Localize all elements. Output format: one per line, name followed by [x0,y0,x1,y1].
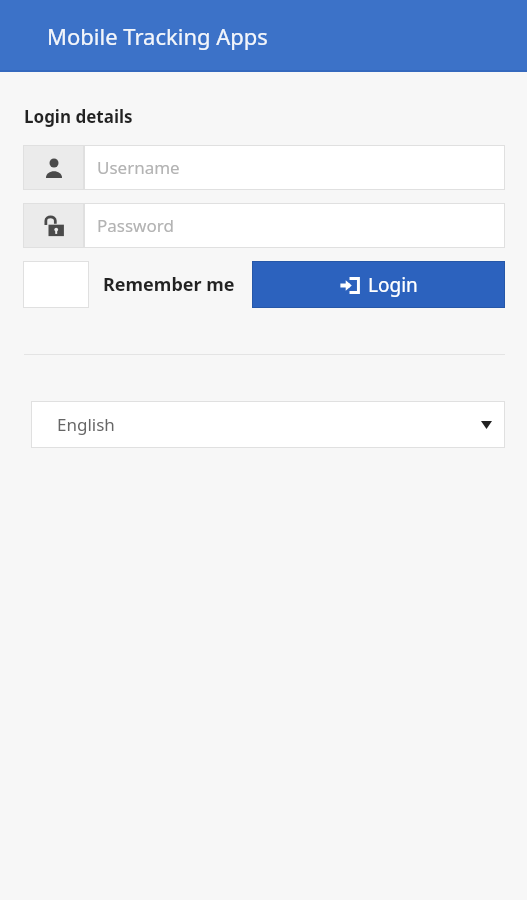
staticText: Password [97,214,174,237]
button[interactable]: Username [23,145,505,190]
button[interactable]: Login [252,261,505,308]
button[interactable]: Remember me checkbox [23,261,89,308]
staticText: English [57,413,115,436]
staticText: Login details [24,105,133,128]
staticText: Username [97,156,180,179]
button[interactable]: Remember me [103,272,235,297]
button[interactable]: English [31,401,505,448]
staticText: Login [368,272,418,298]
staticText: Mobile Tracking Apps [47,21,268,51]
button[interactable]: Password [23,203,505,248]
